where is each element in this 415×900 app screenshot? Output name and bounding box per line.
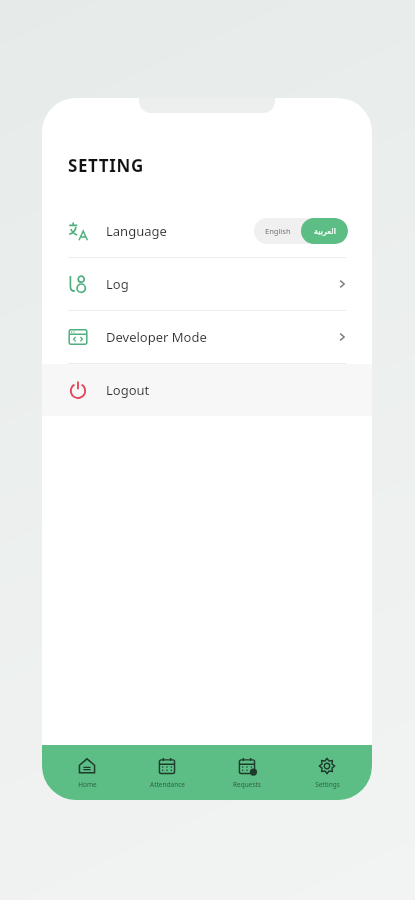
staticText: Attendance [150, 780, 185, 789]
staticText: Settings [315, 780, 340, 789]
button[interactable]: Language [42, 205, 372, 257]
button[interactable]: Log [42, 258, 372, 310]
staticText: Developer Mode [106, 328, 207, 346]
button[interactable]: Settings [292, 745, 362, 800]
staticText: Log [106, 275, 129, 293]
button[interactable]: English [254, 218, 301, 244]
button[interactable]: Requests [212, 745, 282, 800]
button[interactable]: Logout [42, 364, 372, 416]
button[interactable]: Developer Mode [42, 311, 372, 363]
button[interactable]: Attendance [132, 745, 202, 800]
button[interactable]: Home [52, 745, 122, 800]
staticText: Home [78, 780, 97, 789]
staticText: SETTING [68, 154, 144, 177]
staticText: Logout [106, 381, 150, 399]
staticText: English [265, 226, 291, 236]
staticText: Language [106, 222, 167, 240]
button[interactable]: العربية [301, 218, 348, 244]
staticText: Requests [233, 780, 261, 789]
staticText: العربية [314, 227, 336, 236]
